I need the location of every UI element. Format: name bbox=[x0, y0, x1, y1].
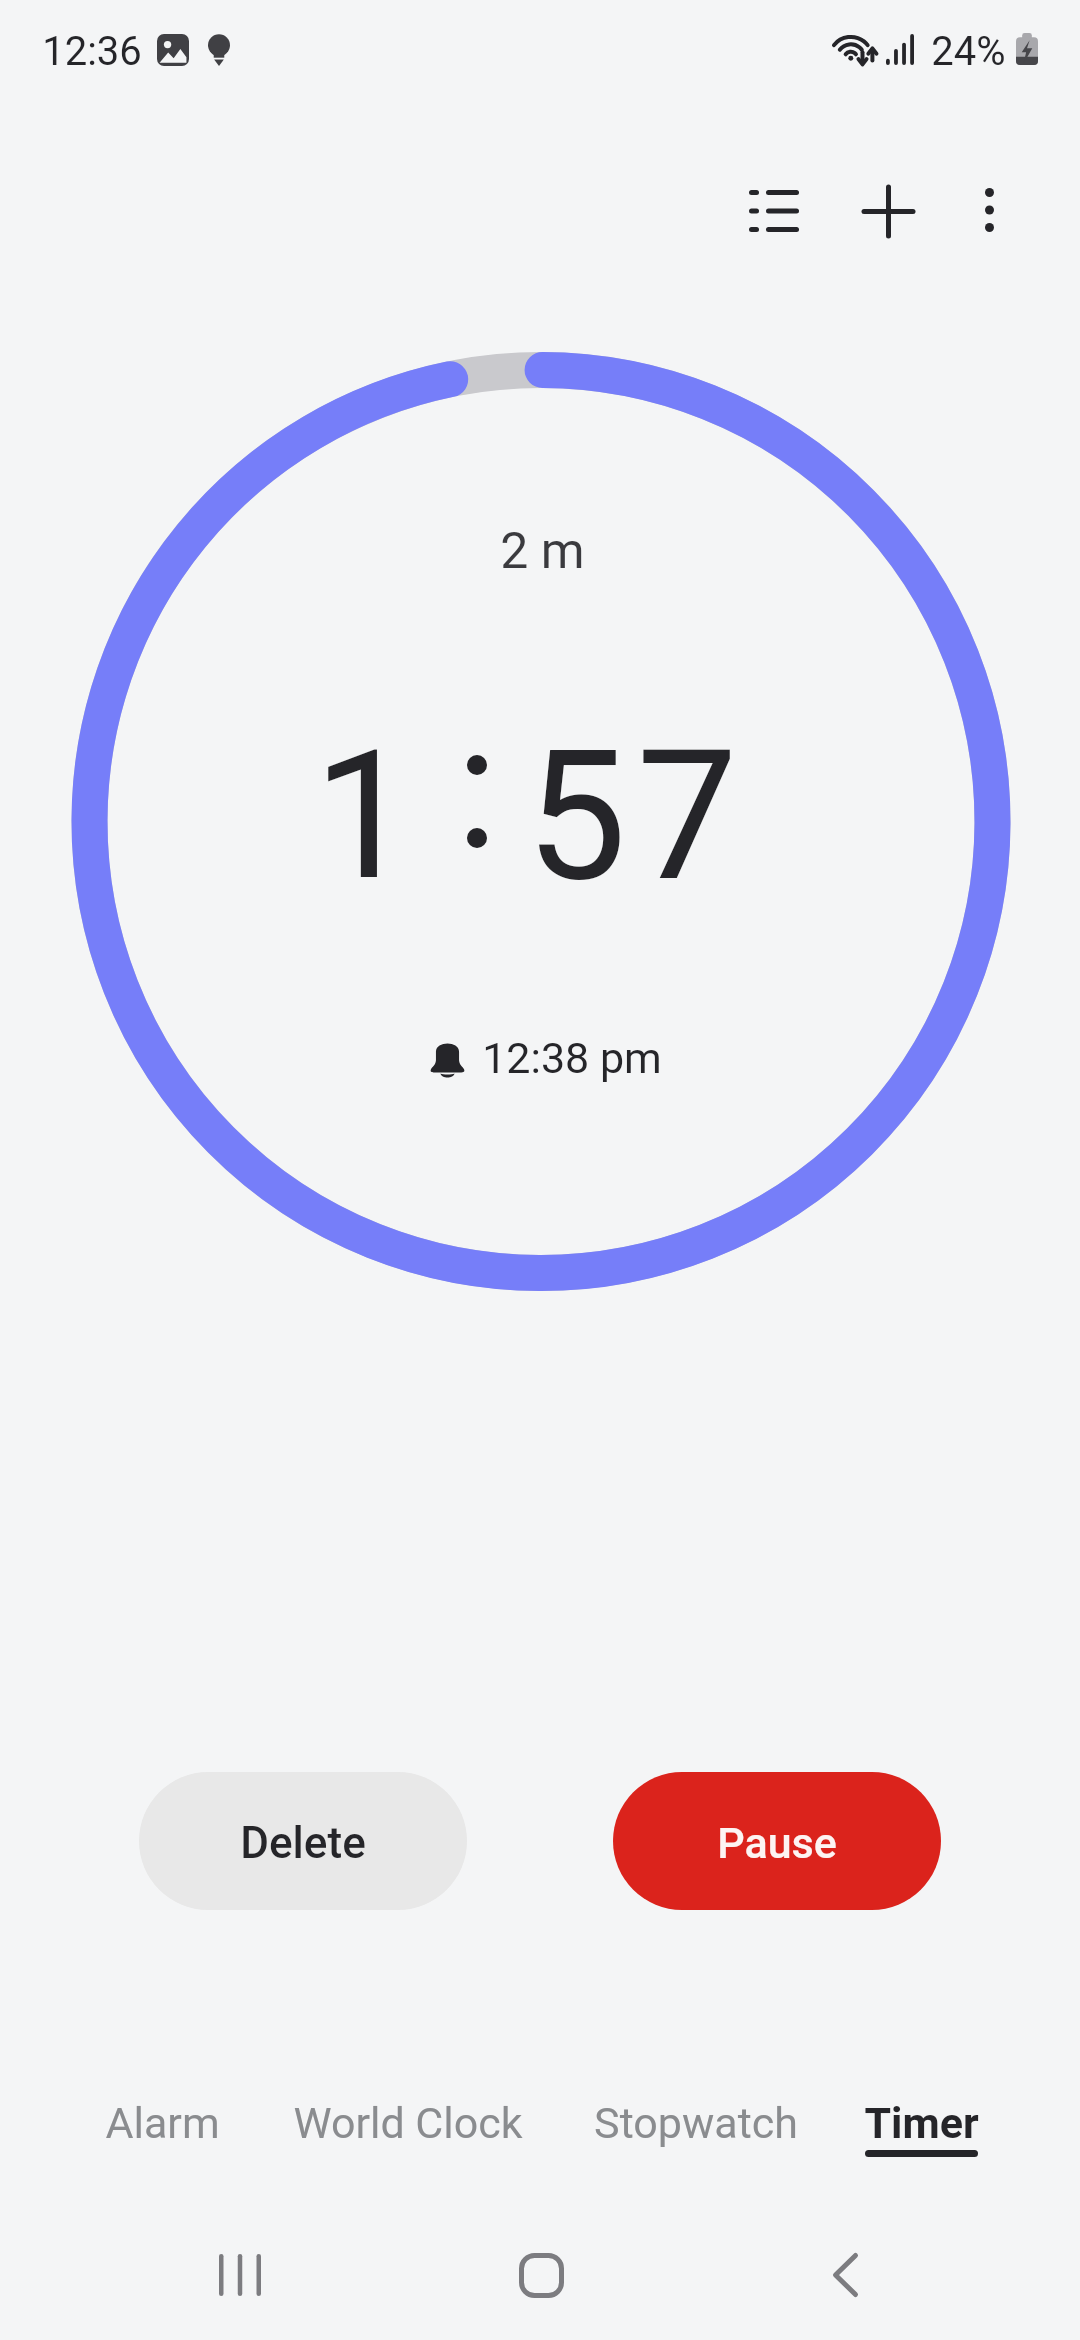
button[interactable]: Timer dial, 1 minute 57 seconds remainin… bbox=[71, 352, 1010, 1291]
button[interactable]: World Clock bbox=[258, 2060, 558, 2180]
staticText: 2 m bbox=[500, 522, 585, 581]
staticText: 24% bbox=[931, 28, 1006, 75]
button[interactable]: Back bbox=[770, 2200, 920, 2340]
staticText: 12:36 bbox=[42, 28, 142, 75]
staticText: World Clock bbox=[293, 2098, 523, 2148]
staticText: 1 bbox=[313, 711, 414, 921]
staticText: 12:38 pm bbox=[482, 1033, 662, 1083]
button[interactable]: Stopwatch bbox=[546, 2060, 846, 2180]
staticText: Stopwatch bbox=[594, 2098, 798, 2148]
staticText: 5 bbox=[525, 711, 627, 922]
button[interactable]: Delete bbox=[139, 1772, 467, 1910]
staticText: Timer bbox=[864, 2098, 979, 2148]
button[interactable]: Pause bbox=[613, 1772, 941, 1910]
button[interactable]: Recent apps bbox=[165, 2200, 315, 2340]
button[interactable]: More options bbox=[919, 140, 1059, 280]
staticText: Alarm bbox=[105, 2098, 220, 2148]
button[interactable]: Add timer bbox=[818, 141, 958, 281]
button[interactable]: Alarm bbox=[12, 2060, 312, 2180]
staticText: Pause bbox=[717, 1818, 837, 1868]
staticText: 7 bbox=[636, 711, 738, 922]
button[interactable]: Timer list bbox=[704, 141, 844, 281]
staticText: Delete bbox=[240, 1817, 366, 1869]
button[interactable]: Timer bbox=[771, 2060, 1071, 2180]
button[interactable]: Home bbox=[466, 2200, 616, 2340]
